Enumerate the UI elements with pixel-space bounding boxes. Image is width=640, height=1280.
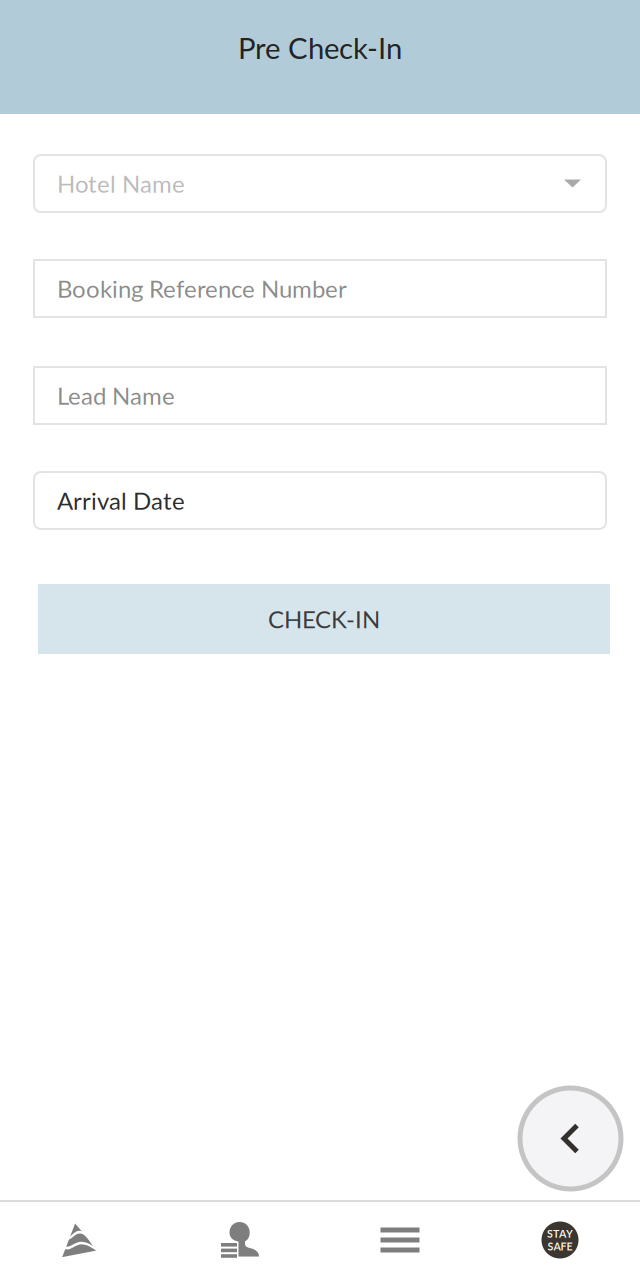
- staticText: Hotel Name: [57, 169, 185, 198]
- button[interactable]: Hotel Name: [34, 155, 606, 212]
- button[interactable]: Booking Reference Number: [34, 260, 606, 317]
- staticText: Arrival Date: [57, 486, 185, 515]
- button[interactable]: My Profile: [160, 1200, 320, 1280]
- staticText: STAY: [547, 1227, 573, 1240]
- button[interactable]: Back: [520, 1088, 621, 1189]
- staticText: Booking Reference Number: [57, 274, 347, 303]
- button[interactable]: Explore: [0, 1200, 160, 1280]
- button[interactable]: CHECK-IN: [38, 584, 610, 654]
- staticText: CHECK-IN: [268, 605, 380, 633]
- staticText: Pre Check-In: [238, 30, 402, 65]
- button[interactable]: Lead Name: [34, 367, 606, 424]
- staticText: SAFE: [547, 1240, 572, 1253]
- button[interactable]: Stay Safe: [480, 1200, 640, 1280]
- staticText: Lead Name: [57, 381, 175, 410]
- button[interactable]: Menu: [320, 1200, 480, 1280]
- button[interactable]: Arrival Date: [34, 472, 606, 529]
